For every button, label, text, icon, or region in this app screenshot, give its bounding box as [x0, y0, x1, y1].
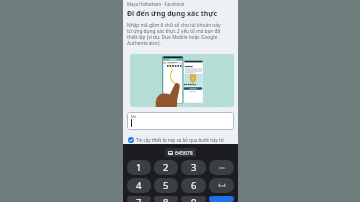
staticText: 9 [191, 196, 197, 202]
staticText: 8 [163, 196, 169, 202]
staticText: 7 [136, 196, 142, 202]
staticText: 645678 [175, 149, 193, 156]
staticText: 4 [136, 179, 142, 192]
staticText: Tin cậy thiết bị này và bỏ qua bước này … [136, 137, 224, 143]
staticText: 2 [163, 161, 169, 174]
button[interactable]: 5 [154, 178, 178, 193]
staticText: 5 [163, 179, 169, 192]
staticText: Mã [131, 114, 136, 119]
button[interactable]: Mã [127, 112, 234, 130]
button[interactable]: 9 [181, 196, 206, 202]
button[interactable]: 3 [181, 160, 206, 175]
button[interactable]: Space [209, 178, 234, 193]
button[interactable]: 6 [181, 178, 206, 193]
staticText: 3 [191, 161, 197, 174]
button[interactable]: 4 [127, 178, 151, 193]
button[interactable]: 8 [154, 196, 178, 202]
staticText: Maya Holbeksen · Facebook [127, 1, 185, 7]
button[interactable]: Enter [209, 196, 234, 202]
button[interactable]: 1 [127, 160, 151, 175]
staticText: 6 [191, 179, 197, 192]
button[interactable]: Backspace [209, 160, 234, 175]
button[interactable]: 645678 [168, 149, 193, 156]
button[interactable]: Tin cậy thiết bị này và bỏ qua bước này … [128, 136, 233, 144]
staticText: Nhập mã gồm 6 chữ số cho tài khoản này t… [127, 22, 222, 46]
button[interactable]: 7 [127, 196, 151, 202]
staticText: 1 [136, 161, 142, 174]
staticText: Đi đến ứng dụng xác thực [127, 9, 218, 19]
button[interactable]: 2 [154, 160, 178, 175]
